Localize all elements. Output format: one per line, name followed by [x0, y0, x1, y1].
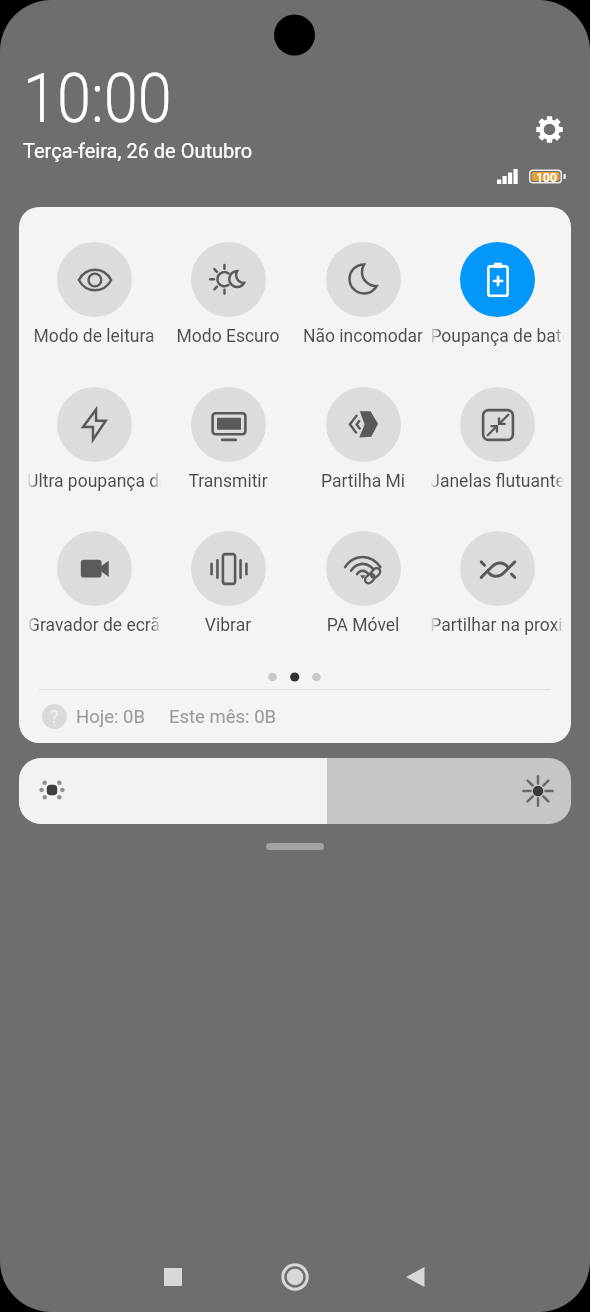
staticText: Vibrar [161, 615, 295, 636]
button[interactable] [299, 385, 427, 497]
staticText: Modo de leitura [27, 326, 161, 347]
staticText: 10:00 [23, 59, 172, 139]
staticText: Poupança de bateria [430, 326, 564, 347]
staticText: Terça-feira, 26 de Outubro [23, 139, 253, 162]
button[interactable]: Settings [527, 107, 571, 151]
button[interactable] [164, 385, 292, 497]
button[interactable] [30, 529, 158, 641]
button[interactable]: Back [390, 1252, 440, 1302]
staticText: Este mês: 0B [169, 706, 277, 728]
staticText: Transmitir [161, 471, 295, 492]
staticText: Janelas flutuantes [430, 471, 564, 492]
button[interactable] [299, 529, 427, 641]
button[interactable]: Home [270, 1252, 320, 1302]
button[interactable] [30, 240, 158, 352]
button[interactable] [30, 385, 158, 497]
staticText: Partilhar na proximidade [430, 615, 564, 636]
button[interactable]: Recent apps [148, 1252, 198, 1302]
button[interactable] [433, 529, 561, 641]
staticText: ? [50, 706, 59, 727]
button[interactable] [433, 240, 561, 352]
button[interactable] [299, 240, 427, 352]
button[interactable] [164, 240, 292, 352]
staticText: Gravador de ecrã [27, 615, 161, 636]
staticText: Modo Escuro [161, 326, 295, 347]
button[interactable] [433, 385, 561, 497]
staticText: PA Móvel [296, 615, 430, 636]
staticText: Hoje: 0B [76, 706, 145, 728]
staticText: Ultra poupança de bateria [27, 471, 161, 492]
staticText: 100 [530, 171, 563, 185]
staticText: Partilha Mi [296, 471, 430, 492]
button[interactable]: Brightness [19, 758, 571, 824]
staticText: Não incomodar [296, 326, 430, 347]
button[interactable] [164, 529, 292, 641]
